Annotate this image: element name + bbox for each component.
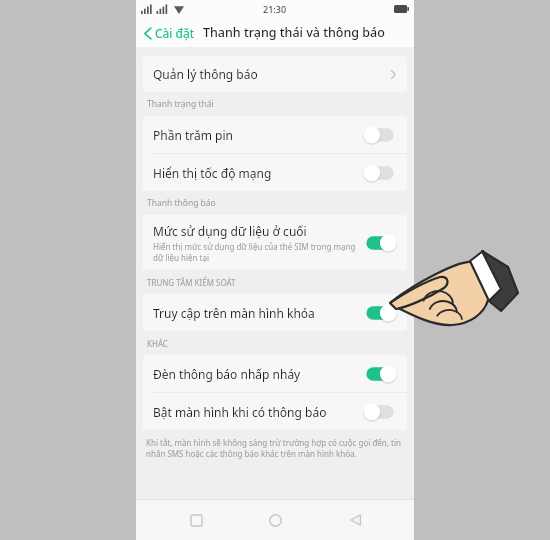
staticText: Mức sử dụng dữ liệu ở cuối [153,223,307,239]
button[interactable]: Mức sử dụng dữ liệu [363,234,397,252]
button[interactable]: Recents [176,500,216,540]
button[interactable]: Cài đặt [142,21,197,45]
button[interactable]: Bật màn hình [363,403,397,421]
staticText: Quản lý thông báo [153,66,390,82]
button[interactable]: Phần trăm pin [363,126,397,144]
button[interactable]: Hiển thị tốc độ mạng [143,154,407,191]
staticText: 21:30 [263,3,287,15]
staticText: Phần trăm pin [153,127,363,143]
staticText: Bật màn hình khi có thông báo [153,404,363,420]
staticText: KHÁC [147,338,168,349]
staticText: Khi tắt, màn hình sẽ không sáng trừ trườ… [146,437,404,459]
staticText: Truy cập trên màn hình khóa [153,305,363,321]
staticText: Đèn thông báo nhấp nháy [153,366,363,382]
button[interactable]: Truy cập màn hình khóa [363,304,397,322]
staticText: Thanh trạng thái và thông báo [203,24,385,41]
button[interactable]: Mức sử dụng dữ liệu ở cuối [143,215,407,270]
button[interactable]: Bật màn hình khi có thông báo [143,393,407,430]
staticText: Thanh trạng thái [147,98,214,110]
staticText: Thanh thông báo [147,197,216,209]
button[interactable]: Back [335,500,375,540]
staticText: Hiển thị tốc độ mạng [153,165,363,181]
button[interactable]: Phần trăm pin [143,116,407,153]
button[interactable]: Hiển thị tốc độ mạng [363,164,397,182]
button[interactable]: Đèn thông báo nhấp nháy [143,355,407,392]
staticText: TRUNG TÂM KIỂM SOÁT [147,277,236,288]
button[interactable]: Home [255,500,295,540]
button[interactable]: Quản lý thông báo [143,56,407,92]
button[interactable]: Đèn thông báo [363,365,397,383]
staticText: Cài đặt [155,25,195,41]
button[interactable]: Truy cập trên màn hình khóa [143,294,407,331]
staticText: Hiển thị mức sử dụng dữ liệu của thẻ SIM… [153,241,357,263]
